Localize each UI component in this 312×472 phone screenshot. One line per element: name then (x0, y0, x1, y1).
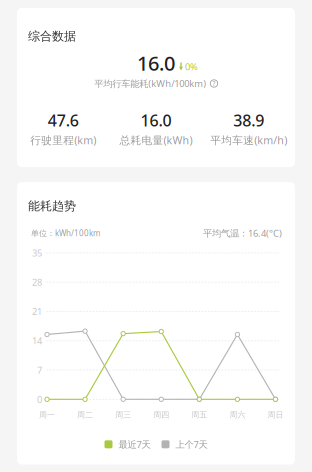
button[interactable]: 关于平均行车能耗 (210, 80, 218, 87)
staticText: 35 (32, 247, 42, 259)
staticText: 周五 (191, 410, 207, 420)
staticText: 周日 (267, 410, 283, 420)
staticText: 最近7天 (118, 438, 150, 450)
staticText: 周二 (77, 410, 93, 420)
staticText: 总耗电量(kWh) (119, 133, 192, 147)
staticText: 38.9 (233, 110, 264, 131)
button[interactable]: 上个7天 (161, 438, 207, 450)
staticText: 上个7天 (175, 438, 207, 450)
staticText: 14 (32, 334, 42, 347)
staticText: 周一 (39, 410, 55, 420)
staticText: 21 (32, 305, 42, 318)
staticText: 平均车速(km/h) (210, 133, 287, 147)
staticText: 能耗趋势 (28, 199, 76, 213)
staticText: ? (212, 79, 215, 88)
staticText: 47.6 (48, 110, 79, 131)
staticText: 周四 (153, 410, 169, 420)
staticText: 行驶里程(km) (30, 133, 96, 147)
staticText: 周三 (115, 410, 131, 420)
staticText: 周六 (229, 410, 245, 420)
staticText: 0 (37, 393, 42, 405)
button[interactable]: 最近7天 (104, 438, 150, 450)
staticText: 单位：kWh/100km (31, 228, 100, 238)
staticText: 7 (37, 364, 42, 376)
staticText: 平均行车能耗(kWh/100km) (94, 77, 206, 90)
staticText: 28 (32, 276, 42, 288)
staticText: 16.0 (137, 50, 175, 76)
staticText: 16.0 (140, 110, 171, 131)
staticText: 综合数据 (28, 29, 76, 44)
staticText: 平均气温：16.4(°C) (203, 227, 282, 239)
staticText: 0% (185, 60, 198, 73)
